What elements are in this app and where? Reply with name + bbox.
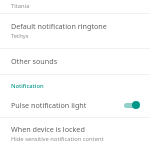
staticText: Other sounds <box>11 56 58 66</box>
staticText: Hide sensitive notification content <box>11 135 104 143</box>
button[interactable]: Default notification ringtone <box>0 14 150 48</box>
button[interactable]: Pulse notification light <box>0 94 150 117</box>
button[interactable]: When device is locked <box>0 118 150 150</box>
staticText: Pulse notification light <box>11 100 87 110</box>
staticText: Tethys <box>11 32 29 40</box>
button[interactable]: Pulse notification light toggle <box>123 99 143 111</box>
staticText: Notification <box>11 82 44 90</box>
button[interactable]: Other sounds <box>0 49 150 74</box>
staticText: When device is locked <box>11 124 85 134</box>
button[interactable]: Titania <box>0 0 150 13</box>
staticText: Titania <box>11 2 30 10</box>
staticText: Default notification ringtone <box>11 21 107 31</box>
